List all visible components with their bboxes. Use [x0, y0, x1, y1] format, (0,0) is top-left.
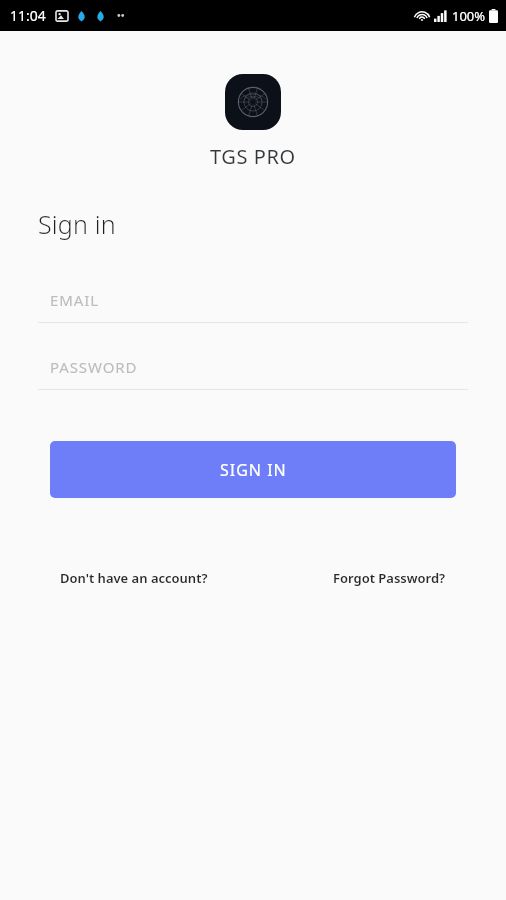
staticText: PASSWORD: [50, 357, 138, 377]
button[interactable]: PASSWORD: [38, 352, 468, 390]
button[interactable]: Forgot Password?: [325, 563, 454, 593]
button[interactable]: Don't have an account?: [52, 563, 216, 593]
staticText: 100%: [452, 7, 486, 25]
staticText: TGS PRO: [210, 143, 296, 170]
staticText: EMAIL: [50, 290, 99, 310]
staticText: SIGN IN: [220, 459, 287, 481]
button[interactable]: SIGN IN: [50, 441, 456, 498]
staticText: Sign in: [38, 207, 116, 241]
staticText: 11:04: [10, 6, 46, 25]
staticText: Forgot Password?: [333, 569, 446, 587]
other: TGS Pro logo: [225, 74, 281, 130]
staticText: Don't have an account?: [60, 569, 208, 587]
button[interactable]: EMAIL: [38, 285, 468, 323]
